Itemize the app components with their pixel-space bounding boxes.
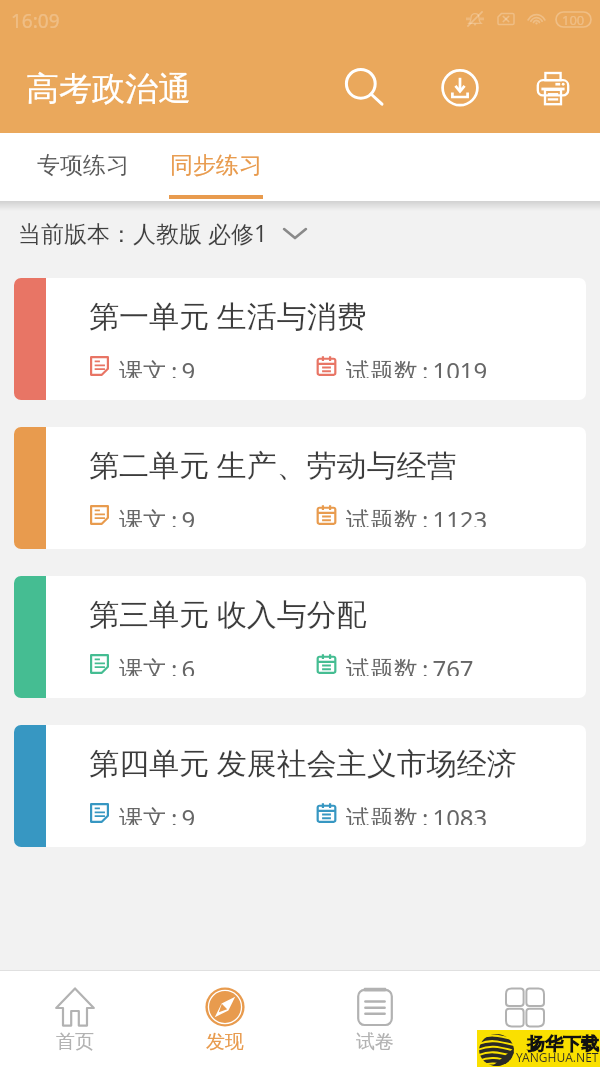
button[interactable]: 专项练习 [13, 133, 153, 201]
button[interactable]: Print [522, 58, 584, 120]
staticText: 试题数 : 1123 [346, 503, 488, 527]
staticText: 课文 : 9 [119, 503, 196, 527]
button[interactable]: More [450, 971, 600, 1067]
staticText: 同步练习 [170, 151, 262, 180]
staticText: 试题数 : 767 [346, 652, 474, 676]
staticText: 专项练习 [37, 151, 129, 180]
staticText: 第二单元 生产、劳动与经营 [89, 444, 457, 485]
staticText: 当前版本：人教版 必修1 [18, 217, 268, 248]
button[interactable]: 同步练习 [146, 133, 286, 201]
staticText: 发现 [206, 1030, 244, 1054]
staticText: 第一单元 生活与消费 [89, 295, 367, 336]
button[interactable]: Search [333, 58, 395, 120]
staticText: 高考政治通 [26, 68, 191, 110]
button[interactable]: Papers [300, 971, 450, 1067]
button[interactable]: 第三单元 收入与分配 [14, 576, 586, 698]
button[interactable]: Home [0, 971, 150, 1067]
staticText: 第四单元 发展社会主义市场经济 [89, 742, 517, 783]
staticText: 首页 [56, 1030, 94, 1054]
staticText: 课文 : 6 [119, 652, 196, 676]
button[interactable]: 第二单元 生产、劳动与经营 [14, 427, 586, 549]
staticText: 第三单元 收入与分配 [89, 593, 367, 634]
staticText: 试卷 [356, 1030, 394, 1054]
button[interactable]: Download [429, 58, 491, 120]
button[interactable]: 第一单元 生活与消费 [14, 278, 586, 400]
staticText: YANGHUA.NET [516, 1049, 599, 1065]
staticText: 课文 : 9 [119, 801, 196, 825]
button[interactable]: 当前版本：人教版 必修1 [18, 217, 308, 248]
staticText: 16:09 [11, 8, 60, 34]
button[interactable]: 第四单元 发展社会主义市场经济 [14, 725, 586, 847]
staticText: 试题数 : 1019 [346, 354, 488, 378]
staticText: 课文 : 9 [119, 354, 196, 378]
staticText: 扬华下载 [527, 1033, 599, 1056]
staticText: 100 [562, 11, 585, 26]
button[interactable]: Discover [150, 971, 300, 1067]
staticText: 试题数 : 1083 [346, 801, 488, 825]
